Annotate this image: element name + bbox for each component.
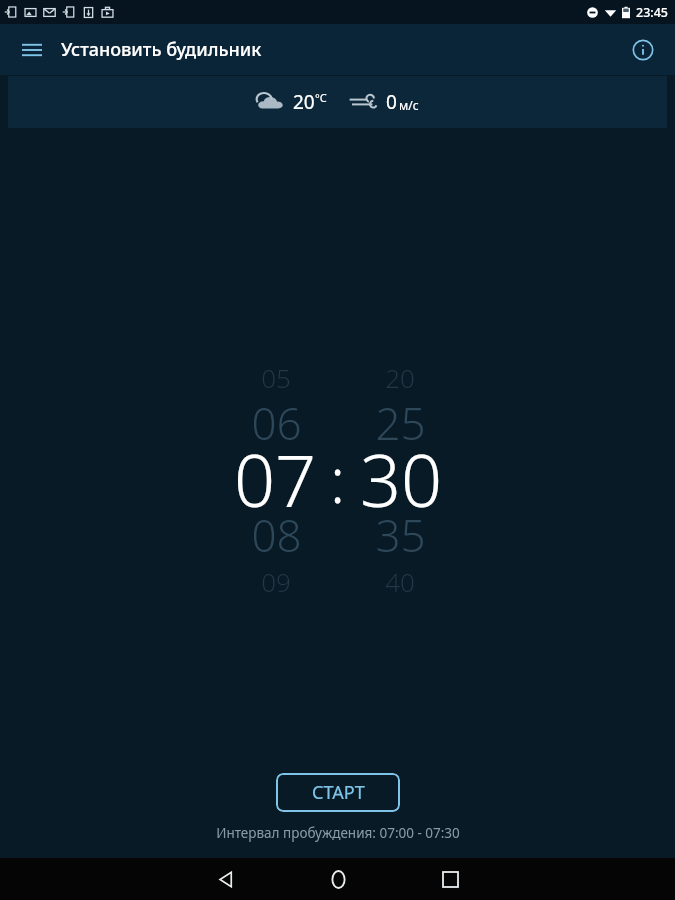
button[interactable]: Информация (623, 30, 663, 70)
staticText: 35 (375, 505, 426, 565)
button[interactable]: 06 (228, 393, 324, 453)
button[interactable]: 20 (352, 360, 448, 395)
button[interactable]: 25 (352, 393, 448, 453)
staticText: 30 (360, 430, 443, 528)
staticText: 25 (375, 393, 426, 453)
button[interactable]: 08 (228, 505, 324, 565)
staticText: 08 (251, 505, 302, 565)
staticText: Установить будильник (61, 37, 262, 62)
staticText: 06 (251, 393, 302, 453)
button[interactable]: Главный экран (310, 858, 366, 900)
button[interactable]: 07 (220, 430, 330, 528)
staticText: 40 (385, 564, 415, 599)
staticText: СТАРТ (312, 780, 365, 805)
button[interactable]: 30 (346, 430, 456, 528)
button[interactable]: Обзор (422, 858, 478, 900)
staticText: 23:45 (636, 4, 669, 21)
button[interactable]: 09 (228, 564, 324, 599)
button[interactable]: Меню (12, 30, 52, 70)
staticText: 09 (261, 564, 291, 599)
button[interactable]: Назад (198, 858, 254, 900)
button[interactable]: 40 (352, 564, 448, 599)
button[interactable]: 35 (352, 505, 448, 565)
staticText: 05 (261, 360, 291, 395)
button[interactable]: 05 (228, 360, 324, 395)
staticText: 20 (293, 89, 315, 115)
button[interactable]: 20 (8, 76, 667, 128)
staticText: 20 (385, 360, 415, 395)
button[interactable]: СТАРТ (276, 773, 400, 812)
staticText: м/с (399, 97, 419, 113)
staticText: : (330, 437, 346, 521)
staticText: Интервал пробуждения: 07:00 - 07:30 (216, 824, 460, 842)
staticText: 0 (386, 89, 397, 115)
staticText: 07 (234, 430, 317, 528)
staticText: °C (315, 90, 327, 105)
